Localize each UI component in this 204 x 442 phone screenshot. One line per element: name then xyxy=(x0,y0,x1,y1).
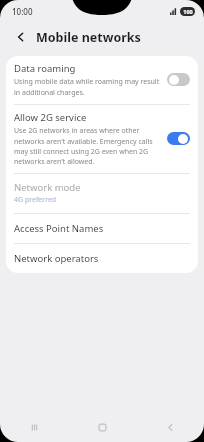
staticText: 100 xyxy=(183,8,193,15)
staticText: Data roaming xyxy=(14,62,76,75)
button[interactable]: Recents xyxy=(0,412,68,442)
staticText: Mobile networks xyxy=(36,29,141,46)
button[interactable]: Home xyxy=(68,412,136,442)
staticText: Allow 2G service xyxy=(14,111,87,124)
staticText: Use 2G networks in areas where other net… xyxy=(14,126,161,166)
staticText: 4G preferred xyxy=(14,195,57,205)
button[interactable]: Access Point Names xyxy=(6,214,198,243)
button[interactable]: Data roaming xyxy=(6,56,198,104)
button[interactable]: Off xyxy=(167,73,190,86)
button[interactable]: Network mode xyxy=(6,174,198,213)
staticText: 10:00 xyxy=(12,6,33,17)
staticText: Network mode xyxy=(14,181,81,194)
staticText: Using mobile data while roaming may resu… xyxy=(14,77,161,97)
button[interactable]: Back xyxy=(136,412,204,442)
staticText: Access Point Names xyxy=(14,222,104,235)
button[interactable]: On xyxy=(167,132,190,145)
button[interactable]: Allow 2G service xyxy=(6,105,198,173)
staticText: Network operators xyxy=(14,252,99,265)
button[interactable]: Back xyxy=(11,27,31,47)
button[interactable]: Network operators xyxy=(6,244,198,273)
